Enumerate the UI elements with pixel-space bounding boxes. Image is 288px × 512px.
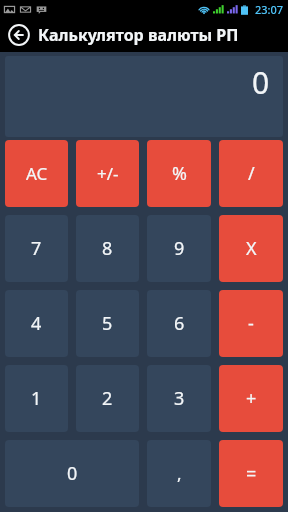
staticText: AC <box>26 162 48 185</box>
staticText: % <box>172 161 187 186</box>
staticText: 4 <box>31 311 42 336</box>
staticText: 3 <box>174 386 185 411</box>
button[interactable]: + <box>219 365 283 432</box>
button[interactable]: AC <box>5 140 68 207</box>
button[interactable]: 3 <box>147 365 211 432</box>
staticText: +/- <box>97 162 119 185</box>
button[interactable]: 8 <box>76 215 139 282</box>
button[interactable]: 0 <box>5 440 139 507</box>
button[interactable]: 1 <box>5 365 68 432</box>
staticText: 6 <box>174 311 185 336</box>
staticText: X <box>246 236 257 261</box>
staticText: / <box>248 161 255 186</box>
button[interactable]: % <box>147 140 211 207</box>
button[interactable]: +/- <box>76 140 139 207</box>
button[interactable]: , <box>147 440 211 507</box>
staticText: + <box>246 386 257 411</box>
button[interactable]: X <box>219 215 283 282</box>
staticText: , <box>177 462 182 485</box>
staticText: 9 <box>174 236 185 261</box>
button[interactable]: - <box>219 290 283 357</box>
staticText: Калькулятор валюты РП <box>38 24 239 46</box>
button[interactable]: 4 <box>5 290 68 357</box>
staticText: - <box>248 311 254 336</box>
staticText: 23:07 <box>255 2 284 17</box>
button[interactable]: 2 <box>76 365 139 432</box>
staticText: = <box>246 461 257 486</box>
staticText: 7 <box>31 236 42 261</box>
staticText: 8 <box>102 236 113 261</box>
button[interactable]: 9 <box>147 215 211 282</box>
staticText: 5 <box>102 311 113 336</box>
button[interactable]: Back <box>5 21 33 49</box>
button[interactable]: / <box>219 140 283 207</box>
button[interactable]: 5 <box>76 290 139 357</box>
staticText: 2 <box>102 386 113 411</box>
button[interactable]: 7 <box>5 215 68 282</box>
button[interactable]: 0 <box>5 56 283 137</box>
staticText: 1 <box>31 386 42 411</box>
staticText: 0 <box>67 461 78 486</box>
button[interactable]: 6 <box>147 290 211 357</box>
staticText: 0 <box>252 62 270 103</box>
button[interactable]: = <box>219 440 283 507</box>
